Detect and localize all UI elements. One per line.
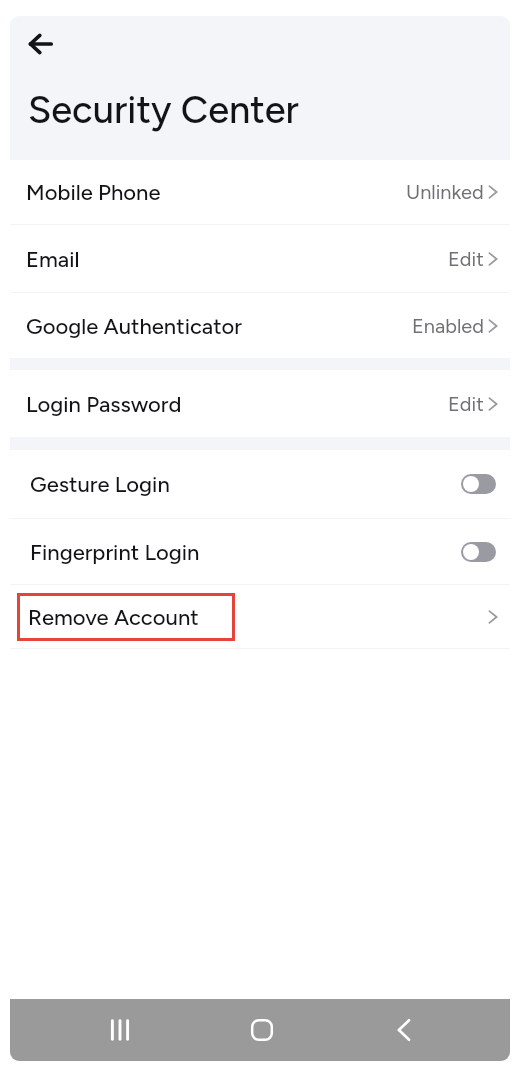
button[interactable]: Recents — [97, 1007, 143, 1053]
button[interactable]: Google Authenticator — [10, 293, 510, 358]
button[interactable]: Email — [10, 225, 510, 292]
staticText: Fingerprint Login — [30, 539, 200, 565]
button[interactable]: Remove Account — [10, 585, 510, 648]
staticText: Remove Account — [28, 604, 199, 630]
staticText: Enabled — [412, 314, 484, 338]
staticText: Email — [26, 246, 80, 272]
button[interactable]: Back — [21, 30, 65, 74]
button[interactable]: Gesture Login — [10, 450, 510, 518]
staticText: Security Center — [28, 87, 299, 133]
button[interactable]: Gesture Login toggle — [461, 474, 496, 494]
button[interactable]: Login Password — [10, 370, 510, 437]
button[interactable]: Back — [381, 1007, 427, 1053]
button[interactable]: Fingerprint Login toggle — [461, 542, 496, 562]
staticText: Edit — [448, 392, 484, 416]
button[interactable]: Fingerprint Login — [10, 519, 510, 584]
button[interactable]: Home — [239, 1007, 285, 1053]
staticText: Unlinked — [406, 180, 484, 204]
staticText: Edit — [448, 247, 484, 271]
staticText: Mobile Phone — [26, 179, 161, 205]
staticText: Gesture Login — [30, 471, 170, 497]
button[interactable]: Mobile Phone — [10, 160, 510, 224]
staticText: Login Password — [26, 391, 182, 417]
staticText: Google Authenticator — [26, 313, 243, 339]
